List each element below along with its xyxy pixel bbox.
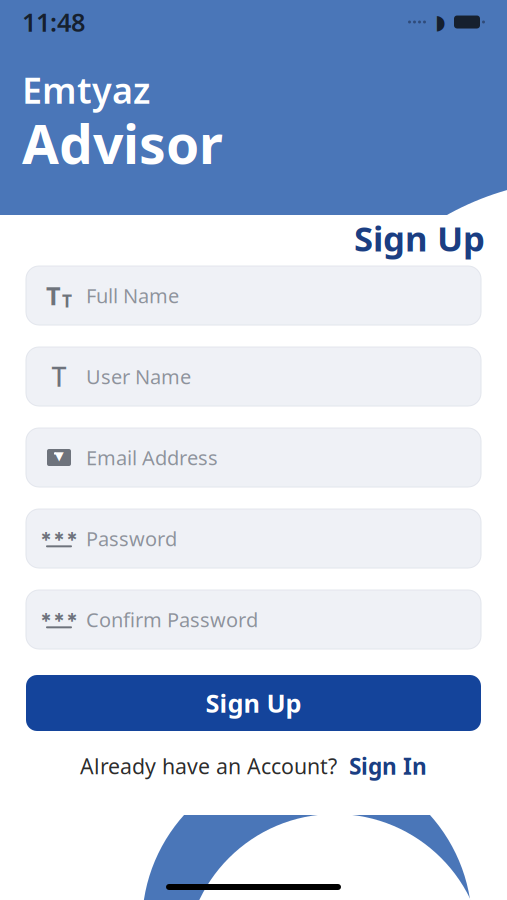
staticText: 11:48 — [22, 5, 85, 39]
staticText: User Name — [86, 363, 191, 390]
staticText: Sign In — [349, 751, 427, 781]
staticText: ▼ — [54, 449, 63, 463]
button[interactable]: ▼ — [26, 428, 481, 487]
staticText: T — [46, 279, 61, 312]
staticText: Emtyaz — [22, 66, 150, 114]
staticText: T — [62, 289, 72, 312]
staticText: T — [51, 359, 66, 394]
staticText: Already have an Account? — [80, 752, 337, 780]
button[interactable]: ✱ — [26, 509, 481, 568]
staticText: Password — [86, 525, 177, 552]
staticText: ✱ — [41, 530, 51, 543]
button[interactable]: Sign In — [349, 751, 427, 781]
staticText: Sign Up — [354, 215, 485, 261]
button[interactable]: T — [26, 347, 481, 406]
staticText: ✱ — [41, 611, 51, 624]
staticText: ✱ — [54, 611, 64, 624]
staticText: ✱ — [67, 530, 77, 543]
staticText: ✱ — [67, 611, 77, 624]
button[interactable]: ✱ — [26, 590, 481, 649]
staticText: ✱ — [54, 530, 64, 543]
button[interactable]: Sign Up — [26, 675, 481, 731]
staticText: Sign Up — [205, 686, 301, 720]
button[interactable]: T — [26, 266, 481, 325]
staticText: Full Name — [86, 282, 179, 309]
staticText: Confirm Password — [86, 606, 258, 633]
staticText: Advisor — [22, 108, 223, 179]
staticText: ◗ — [435, 11, 446, 33]
staticText: Email Address — [86, 444, 218, 471]
